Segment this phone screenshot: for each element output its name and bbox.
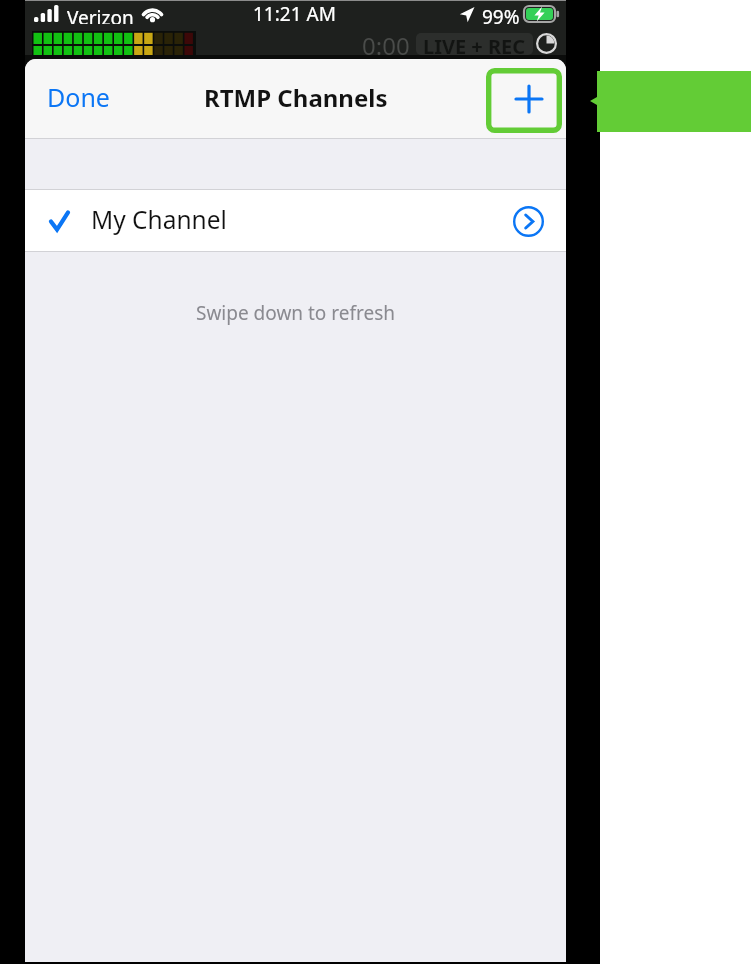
staticText: LIVE + REC [423,33,526,55]
button[interactable]: Add channel [494,64,564,134]
staticText: Verizon [67,5,134,24]
staticText: Swipe down to refresh [25,300,566,326]
staticText: My Channel [91,203,227,236]
staticText: 11:21 AM [253,1,336,27]
staticText: 99% [482,4,520,24]
staticText: RTMP Channels [204,81,388,114]
staticText: 0:00 [362,29,410,58]
button[interactable]: Done [25,66,134,128]
staticText: Done [47,80,110,114]
button[interactable]: My Channel [25,190,566,251]
button[interactable]: Channel details [503,196,553,246]
